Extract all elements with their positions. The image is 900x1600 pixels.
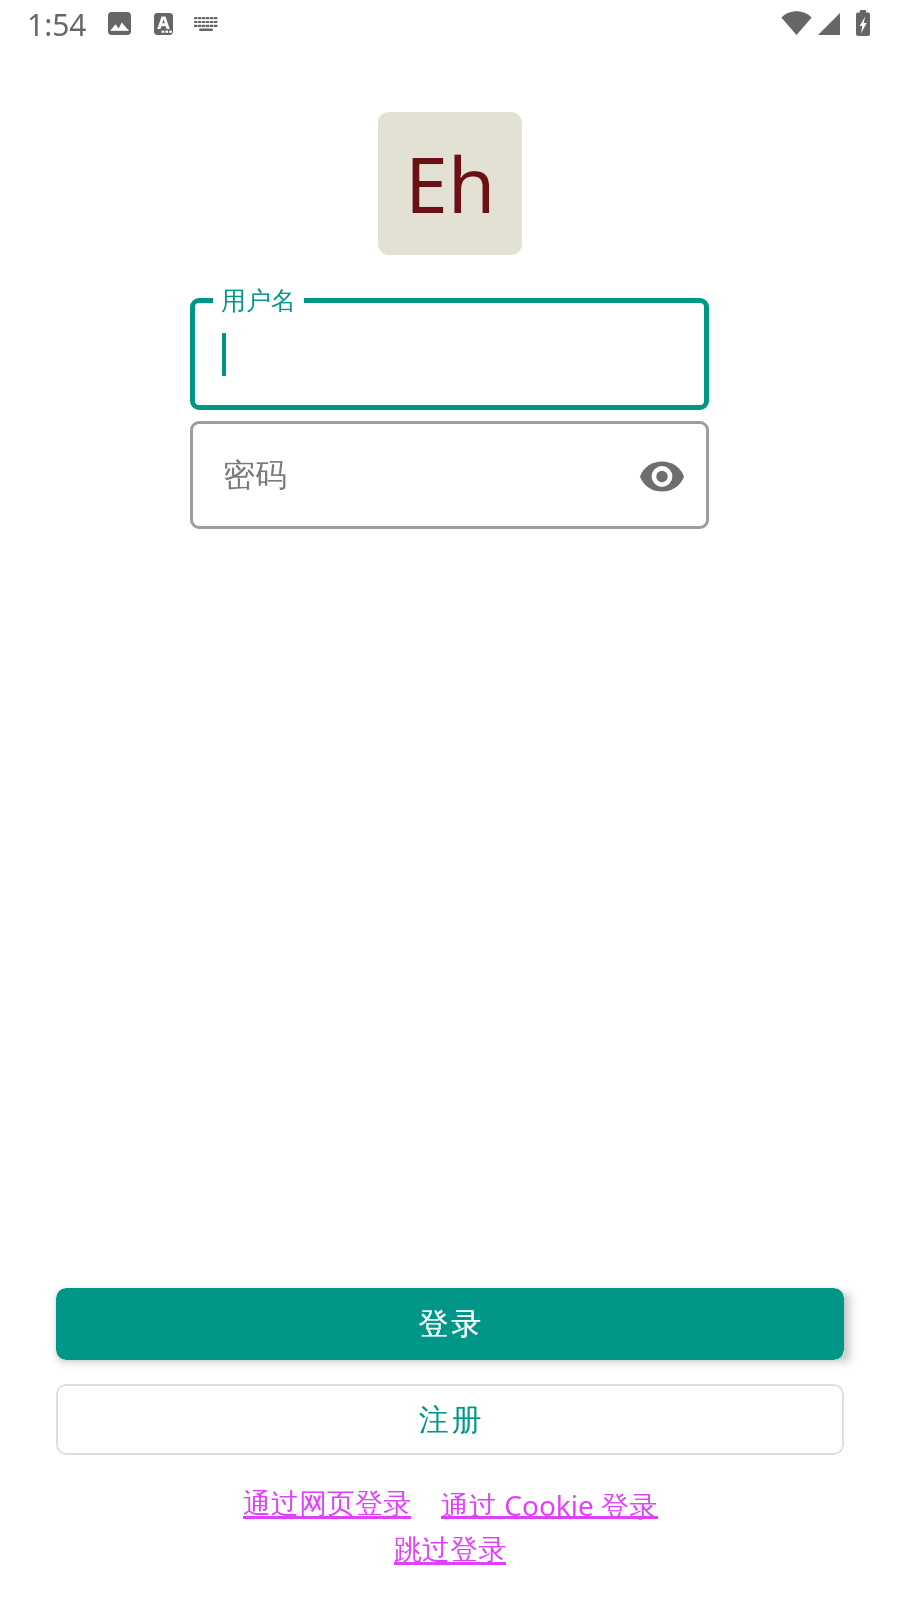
- staticText: 密码: [223, 455, 287, 495]
- staticText: 注册: [417, 1401, 483, 1439]
- button[interactable]: 注册: [56, 1384, 844, 1455]
- button[interactable]: 跳过登录: [394, 1532, 506, 1572]
- button[interactable]: 登录: [56, 1288, 844, 1360]
- button[interactable]: Show password: [628, 449, 696, 503]
- staticText: 用户名: [221, 285, 296, 316]
- button[interactable]: 密码: [190, 421, 709, 529]
- staticText: 跳过登录: [394, 1532, 506, 1567]
- staticText: 登录: [417, 1305, 483, 1343]
- button[interactable]: 通过网页登录: [243, 1486, 411, 1526]
- staticText: 通过网页登录: [243, 1486, 411, 1521]
- staticText: Eh: [405, 131, 496, 236]
- button[interactable]: 用户名: [190, 298, 709, 410]
- staticText: 1:54: [27, 4, 87, 45]
- button[interactable]: 通过 Cookie 登录: [441, 1486, 658, 1526]
- staticText: 通过 Cookie 登录: [441, 1486, 658, 1524]
